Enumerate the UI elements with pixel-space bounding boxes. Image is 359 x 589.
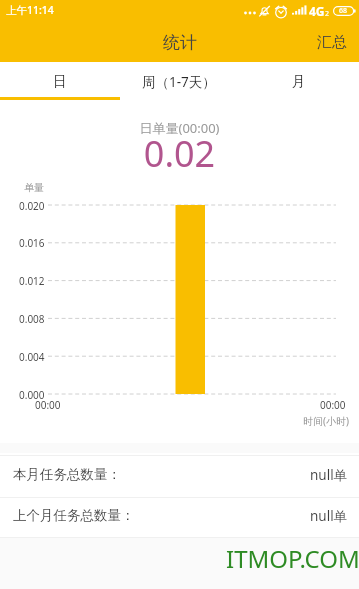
staticText: 日 [53, 73, 67, 90]
staticText: 0.004 [19, 350, 45, 364]
button[interactable]: 上个月任务总数量： [0, 498, 359, 537]
staticText: null单 [310, 466, 348, 484]
button[interactable]: 日 [0, 62, 119, 101]
staticText: 0.02 [0, 129, 359, 178]
staticText: 0.000 [19, 388, 45, 402]
staticText: ITMOP.COM [226, 542, 359, 575]
staticText: 00:00 [35, 398, 61, 412]
staticText: 汇总 [317, 33, 347, 52]
button[interactable]: 月 [239, 62, 359, 101]
staticText: 2 [325, 9, 330, 19]
staticText: 0.008 [19, 312, 45, 326]
staticText: 单量 [24, 181, 44, 194]
staticText: 日单量(00:00) [0, 119, 359, 137]
staticText: 0.020 [19, 199, 45, 213]
staticText: 时间(小时) [303, 414, 349, 428]
button[interactable]: 周（1-7天） [119, 62, 239, 101]
staticText: 月 [292, 73, 306, 90]
staticText: 4G [309, 3, 325, 19]
staticText: 0.012 [19, 274, 45, 288]
staticText: 本月任务总数量： [13, 466, 121, 483]
staticText: 周（1-7天） [142, 73, 216, 91]
button[interactable]: 汇总 [305, 22, 359, 62]
staticText: 0.016 [19, 236, 45, 250]
staticText: 上个月任务总数量： [13, 507, 135, 524]
staticText: 统计 [163, 32, 197, 53]
staticText: null单 [310, 507, 348, 525]
staticText: 00:00 [320, 398, 346, 412]
staticText: 上午11:14 [6, 3, 54, 17]
staticText: 68 [339, 6, 348, 16]
button[interactable]: 本月任务总数量： [0, 456, 359, 497]
